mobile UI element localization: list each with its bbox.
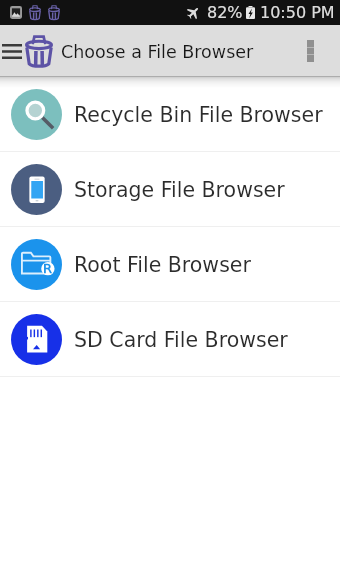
button[interactable]: R: [0, 227, 340, 301]
button[interactable]: Recycle Bin File Browser: [0, 77, 340, 151]
staticText: Root File Browser: [74, 253, 251, 277]
button[interactable]: Storage File Browser: [0, 152, 340, 226]
button[interactable]: More options: [280, 25, 340, 77]
staticText: Recycle Bin File Browser: [74, 103, 323, 127]
staticText: R: [43, 261, 53, 276]
button[interactable]: Open navigation drawer: [0, 25, 24, 77]
staticText: 10:50 PM: [260, 3, 335, 22]
staticText: SD Card File Browser: [74, 328, 288, 352]
staticText: 82%: [207, 3, 243, 22]
staticText: Choose a File Browser: [61, 42, 254, 62]
button[interactable]: SD Card File Browser: [0, 302, 340, 376]
staticText: Storage File Browser: [74, 178, 285, 202]
